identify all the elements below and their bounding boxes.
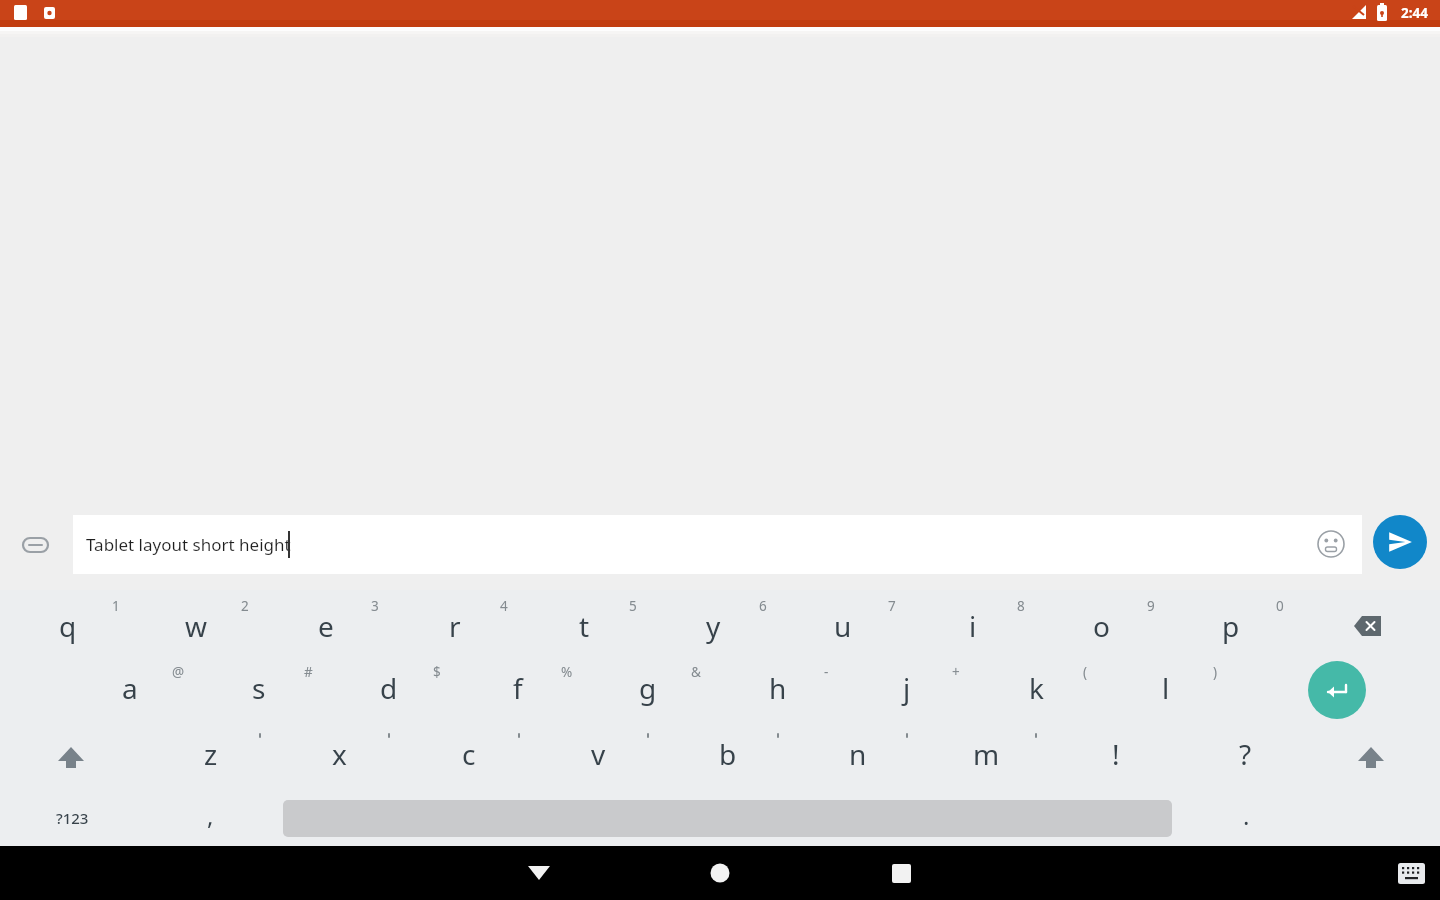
staticText: o (1093, 607, 1110, 645)
staticText: 2 (241, 597, 249, 615)
staticText: g (639, 669, 657, 707)
staticText: # (304, 663, 313, 681)
button[interactable]: n (793, 723, 922, 785)
staticText: b (719, 735, 737, 773)
button[interactable] (1385, 852, 1437, 894)
staticText: v (591, 735, 606, 773)
staticText: % (561, 663, 573, 681)
button[interactable]: p (1166, 595, 1295, 657)
button[interactable]: c (404, 723, 533, 785)
button[interactable]: d (324, 657, 453, 719)
button[interactable] (1306, 726, 1436, 788)
staticText: Tablet layout short height (86, 533, 291, 556)
staticText: @ (172, 663, 185, 681)
staticText: p (1222, 607, 1240, 645)
staticText: j (903, 669, 911, 707)
button[interactable]: g (583, 657, 712, 719)
button[interactable]: t (520, 595, 649, 657)
staticText: 4 (500, 597, 508, 615)
button[interactable]: j (842, 657, 971, 719)
staticText: a (122, 669, 138, 707)
button[interactable] (1316, 529, 1346, 559)
staticText: . (1243, 799, 1250, 832)
button[interactable]: i (908, 595, 1037, 657)
staticText: ) (1213, 663, 1218, 681)
staticText: + (952, 663, 960, 681)
button[interactable] (670, 846, 770, 900)
button[interactable]: z (146, 723, 275, 785)
staticText: q (59, 607, 77, 645)
button[interactable]: y (649, 595, 778, 657)
button[interactable] (1373, 515, 1427, 569)
button[interactable]: q (3, 595, 132, 657)
button[interactable]: m (922, 723, 1051, 785)
staticText: e (318, 607, 334, 645)
staticText: i (969, 607, 977, 645)
staticText: d (380, 669, 398, 707)
button[interactable]: w (132, 595, 261, 657)
button[interactable] (489, 846, 589, 900)
staticText: n (849, 735, 867, 773)
button[interactable] (851, 846, 951, 900)
button[interactable] (1308, 661, 1366, 719)
staticText: 5 (629, 597, 637, 615)
button[interactable]: ? (1181, 723, 1310, 785)
staticText: c (462, 735, 476, 773)
button[interactable]: h (713, 657, 842, 719)
staticText: r (449, 607, 461, 645)
staticText: - (824, 663, 829, 681)
staticText: $ (433, 663, 441, 681)
button[interactable]: s (194, 657, 323, 719)
staticText: w (185, 607, 208, 645)
staticText: k (1029, 669, 1044, 707)
staticText: h (769, 669, 787, 707)
button[interactable]: e (261, 595, 390, 657)
staticText: ( (1083, 663, 1088, 681)
staticText: 8 (1017, 597, 1025, 615)
staticText: 6 (759, 597, 767, 615)
staticText: ? (1239, 735, 1252, 773)
button[interactable]: b (663, 723, 792, 785)
button[interactable]: v (534, 723, 663, 785)
button[interactable]: l (1101, 657, 1230, 719)
staticText: f (513, 669, 523, 707)
staticText: 9 (1147, 597, 1155, 615)
button[interactable] (73, 515, 1362, 574)
button[interactable]: ! (1051, 723, 1180, 785)
staticText: 7 (888, 597, 896, 615)
button[interactable]: k (972, 657, 1101, 719)
staticText: y (706, 607, 721, 645)
button[interactable]: ?123 (10, 790, 135, 845)
button[interactable]: r (390, 595, 519, 657)
staticText: ?123 (56, 808, 89, 828)
button[interactable] (6, 726, 136, 788)
button[interactable]: o (1037, 595, 1166, 657)
staticText: x (332, 735, 347, 773)
button[interactable] (1302, 595, 1440, 657)
staticText: z (204, 735, 218, 773)
button[interactable]: f (453, 657, 582, 719)
staticText: & (691, 663, 701, 681)
staticText: , (207, 799, 214, 832)
staticText: 3 (371, 597, 379, 615)
staticText: u (834, 607, 852, 645)
button[interactable]: a (65, 657, 194, 719)
staticText: 1 (112, 597, 120, 615)
button[interactable]: u (778, 595, 907, 657)
staticText: 2:44 (1401, 4, 1428, 22)
staticText: s (252, 669, 266, 707)
staticText: t (579, 607, 590, 645)
button[interactable]: x (275, 723, 404, 785)
staticText: ! (1112, 735, 1120, 773)
staticText: 0 (1276, 597, 1284, 615)
staticText: m (973, 735, 1000, 773)
staticText: l (1162, 669, 1170, 707)
